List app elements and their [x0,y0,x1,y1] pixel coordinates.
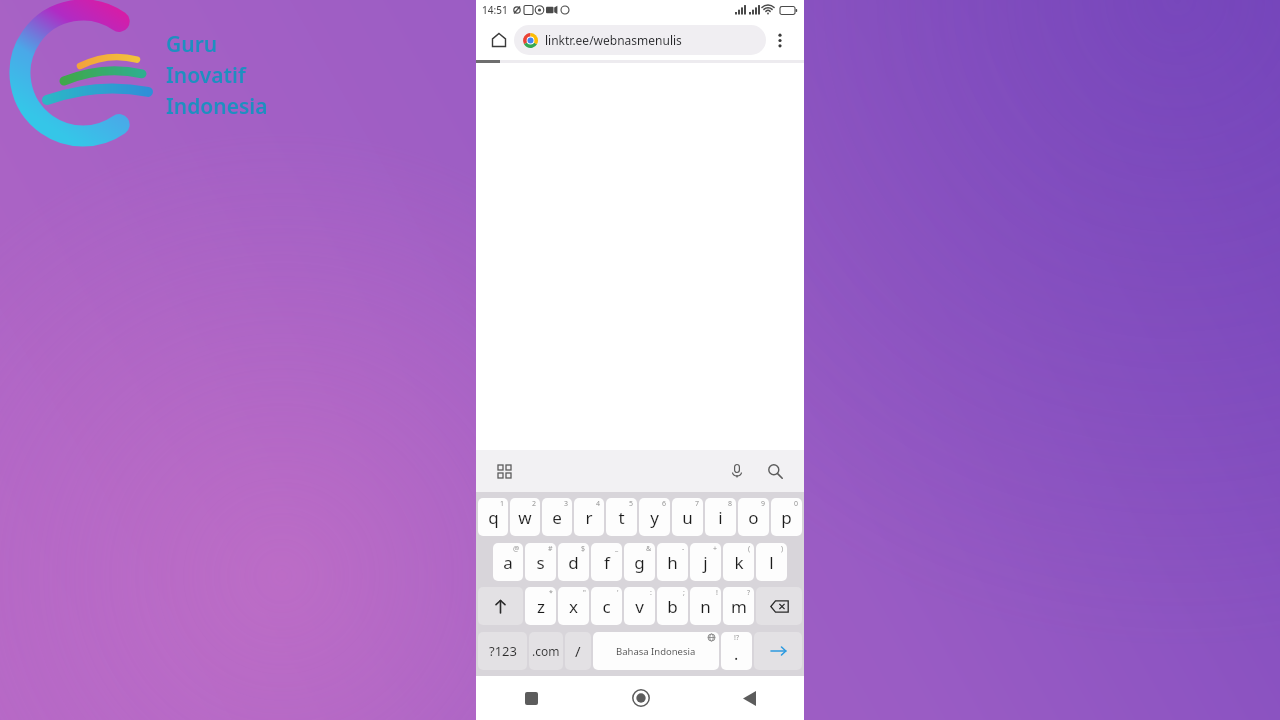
staticText: w [518,506,532,529]
staticText: k [734,551,744,574]
button[interactable]: t [606,498,637,536]
staticText: y [650,506,659,529]
button[interactable]: r [574,498,604,536]
button[interactable]: s [525,543,556,581]
staticText: 8 [728,499,733,509]
staticText: 2 [532,499,537,509]
staticText: @ [513,544,520,554]
staticText: Inovatif [166,61,246,90]
staticText: c [602,595,611,618]
staticText: ' [617,588,619,598]
staticText: b [667,595,678,618]
staticText: v [635,595,644,618]
staticText: z [537,595,545,618]
staticText: 14:51 [482,3,508,17]
button[interactable]: Search [761,457,789,485]
button[interactable]: Back [695,676,804,720]
staticText: . [734,643,739,665]
staticText: q [488,506,499,529]
button[interactable]: x [558,587,589,625]
staticText: $ [581,544,586,554]
staticText: 7 [695,499,700,509]
button[interactable]: y [639,498,670,536]
staticText: l [769,551,774,574]
staticText: ; [683,588,685,598]
button[interactable]: p [771,498,802,536]
button[interactable]: e [542,498,572,536]
staticText: r [585,506,593,529]
button[interactable]: o [738,498,769,536]
staticText: a [503,551,513,574]
staticText: linktr.ee/webnasmenulis [545,32,682,48]
staticText: Indonesia [166,92,268,121]
button[interactable]: ?123 [478,632,527,670]
staticText: & [646,544,652,554]
staticText: d [568,551,579,574]
button[interactable]: n [690,587,721,625]
button[interactable]: w [510,498,540,536]
staticText: n [700,595,711,618]
staticText: !? [734,633,739,643]
staticText: p [781,506,792,529]
staticText: _ [615,544,619,554]
staticText: 9 [761,499,766,509]
button[interactable]: j [690,543,721,581]
button[interactable]: b [657,587,688,625]
staticText: Bahasa Indonesia [616,645,696,658]
staticText: o [748,506,759,529]
staticText: t [618,506,625,529]
button[interactable]: h [657,543,688,581]
staticText: ! [716,588,718,598]
button[interactable]: d [558,543,589,581]
button[interactable]: u [672,498,703,536]
staticText: 6 [662,499,667,509]
staticText: / [575,641,581,661]
button[interactable]: m [723,587,754,625]
staticText: h [667,551,678,574]
button[interactable]: i [705,498,736,536]
staticText: 0 [794,499,799,509]
staticText: m [731,595,747,618]
staticText: - [682,544,685,554]
staticText: x [569,595,578,618]
button[interactable]: Keyboard menu [491,458,517,484]
button[interactable]: k [723,543,754,581]
button[interactable]: .com [529,632,563,670]
button[interactable]: Bahasa Indonesia [593,632,719,670]
button[interactable]: q [478,498,508,536]
staticText: * [549,588,553,598]
staticText: s [536,551,545,574]
staticText: 5 [629,499,634,509]
button[interactable]: z [525,587,556,625]
staticText: ( [748,544,751,554]
button[interactable]: Go [754,632,802,670]
staticText: e [552,506,562,529]
staticText: u [682,506,693,529]
staticText: " [583,588,586,598]
staticText: .com [532,643,560,659]
staticText: ?123 [489,642,517,660]
staticText: 3 [564,499,569,509]
button[interactable]: c [591,587,622,625]
staticText: f [604,551,610,574]
button[interactable]: Voice input [723,457,751,485]
button[interactable]: a [493,543,523,581]
button[interactable]: linktr.ee/webnasmenulis [514,25,766,55]
button[interactable]: Home [486,27,512,53]
button[interactable]: Shift [478,587,523,625]
button[interactable]: Recents [476,676,586,720]
staticText: g [634,551,645,574]
button[interactable]: Backspace [756,587,802,625]
button[interactable]: More options [766,26,794,54]
button[interactable]: f [591,543,622,581]
staticText: 4 [596,499,601,509]
staticText: # [548,544,553,554]
button[interactable]: Home [586,676,695,720]
button[interactable]: . [721,632,752,670]
button[interactable]: v [624,587,655,625]
button[interactable]: g [624,543,655,581]
button[interactable]: / [565,632,591,670]
button[interactable]: l [756,543,787,581]
staticText: i [718,506,723,529]
staticText: : [650,588,652,598]
